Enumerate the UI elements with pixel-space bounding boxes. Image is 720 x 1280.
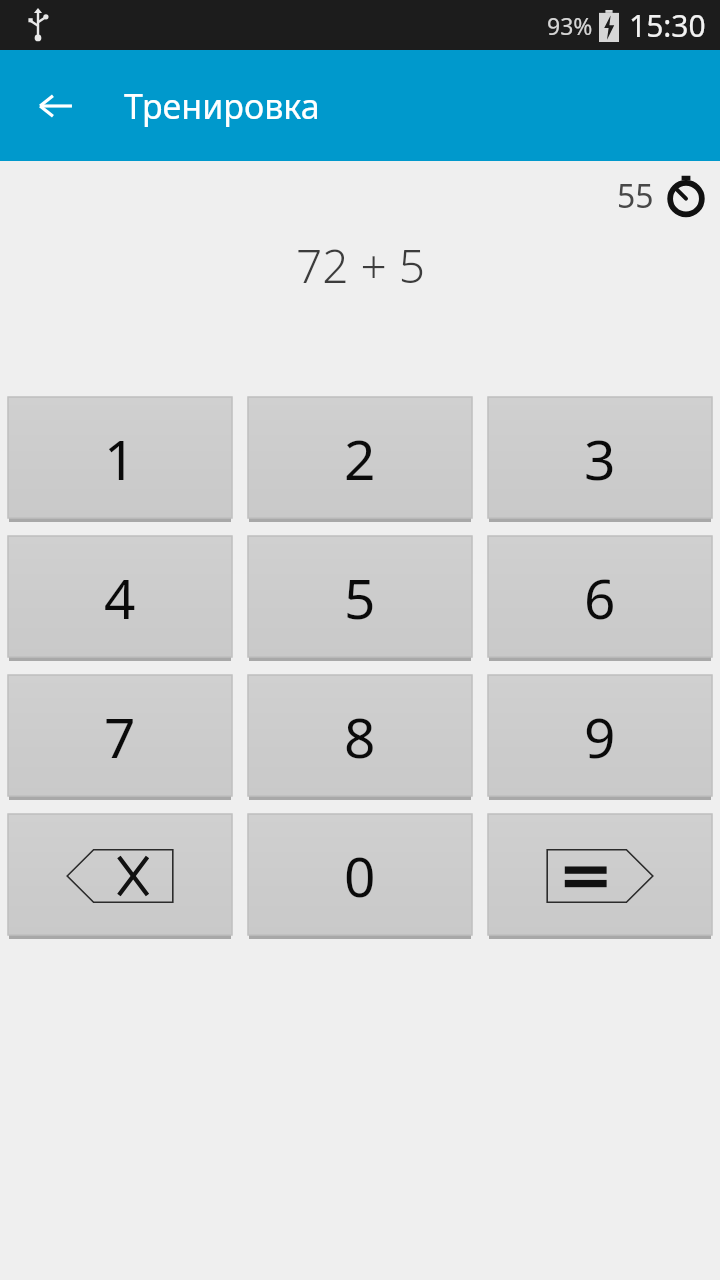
button[interactable]: 1 <box>8 397 232 520</box>
staticText: 1 <box>104 421 136 496</box>
button[interactable]: 4 <box>8 536 232 659</box>
button[interactable]: 2 <box>248 397 472 520</box>
staticText: 4 <box>104 560 136 635</box>
staticText: 5 <box>344 560 376 635</box>
button[interactable]: 8 <box>248 675 472 798</box>
button[interactable]: Back <box>28 78 84 134</box>
button[interactable]: Equals <box>488 814 712 937</box>
other: Timer <box>664 174 708 218</box>
button[interactable]: 7 <box>8 675 232 798</box>
staticText: 7 <box>104 699 136 774</box>
button[interactable]: 5 <box>248 536 472 659</box>
staticText: 93% <box>547 10 593 41</box>
button[interactable]: Backspace <box>8 814 232 937</box>
button[interactable]: 9 <box>488 675 712 798</box>
button[interactable]: 6 <box>488 536 712 659</box>
staticText: 8 <box>344 699 376 774</box>
staticText: 9 <box>584 699 616 774</box>
staticText: 0 <box>344 838 376 913</box>
staticText: 2 <box>344 421 376 496</box>
staticText: 6 <box>584 560 616 635</box>
staticText: 72 + 5 <box>296 234 425 297</box>
staticText: 55 <box>617 174 654 218</box>
staticText: 15:30 <box>629 5 706 46</box>
staticText: Тренировка <box>124 83 320 129</box>
staticText: 3 <box>584 421 616 496</box>
button[interactable]: 3 <box>488 397 712 520</box>
button[interactable]: 0 <box>248 814 472 937</box>
